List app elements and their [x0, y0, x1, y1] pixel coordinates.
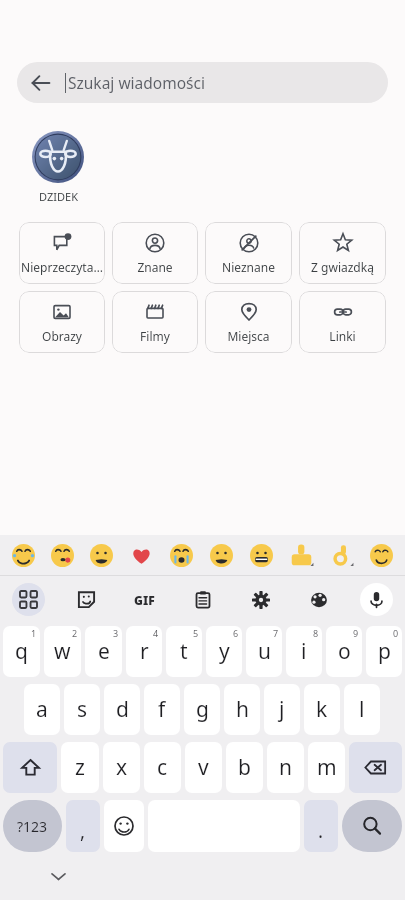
button[interactable]: k — [304, 684, 340, 735]
button[interactable]: Obrazy — [19, 291, 105, 353]
button[interactable]: ?123 — [3, 800, 62, 852]
button[interactable]: Emoji — [4, 535, 43, 575]
staticText: b — [238, 753, 251, 782]
button[interactable]: Emoji — [241, 535, 281, 575]
button[interactable]: Miejsca — [205, 291, 292, 353]
staticText: h — [236, 695, 249, 724]
button[interactable]: DZIDEK — [28, 131, 88, 204]
button[interactable]: n — [267, 742, 304, 793]
staticText: r — [140, 637, 149, 666]
staticText: d — [116, 695, 129, 724]
button[interactable]: o — [326, 626, 362, 677]
staticText: , — [80, 818, 86, 844]
button[interactable]: p — [366, 626, 402, 677]
button[interactable]: Emoji — [121, 535, 161, 575]
button[interactable]: Settings — [244, 583, 277, 616]
staticText: 8 — [313, 627, 319, 639]
staticText: x — [116, 753, 128, 782]
staticText: DZIDEK — [39, 189, 78, 204]
button[interactable]: u — [246, 626, 282, 677]
staticText: g — [196, 695, 209, 724]
button[interactable]: Shift — [3, 742, 57, 793]
staticText: q — [15, 637, 28, 666]
staticText: v — [198, 753, 209, 782]
button[interactable]: y — [206, 626, 242, 677]
button[interactable]: d — [104, 684, 140, 735]
button[interactable]: , — [66, 800, 100, 852]
staticText: Miejsca — [227, 328, 270, 344]
button[interactable]: z — [61, 742, 99, 793]
button[interactable]: Stickers — [70, 583, 103, 616]
button[interactable]: r — [126, 626, 162, 677]
button[interactable]: Search — [342, 800, 402, 852]
staticText: s — [77, 695, 88, 724]
button[interactable]: Back — [17, 62, 388, 103]
staticText: Linki — [329, 328, 356, 344]
staticText: 1 — [31, 627, 37, 639]
button[interactable]: Nieprzeczyta… — [19, 222, 105, 284]
button[interactable]: Emoji — [321, 535, 361, 575]
staticText: . — [318, 818, 324, 844]
button[interactable]: i — [286, 626, 322, 677]
staticText: m — [317, 753, 337, 782]
staticText: c — [157, 753, 168, 782]
other: Back — [17, 62, 65, 103]
button[interactable]: t — [166, 626, 202, 677]
button[interactable]: Emoji — [281, 535, 321, 575]
button[interactable]: Themes — [302, 583, 335, 616]
button[interactable]: Emoji — [82, 535, 121, 575]
staticText: 2 — [72, 627, 78, 639]
staticText: 9 — [353, 627, 359, 639]
button[interactable]: e — [85, 626, 122, 677]
button[interactable]: h — [224, 684, 260, 735]
button[interactable]: Hide keyboard — [44, 862, 72, 890]
button[interactable]: f — [144, 684, 180, 735]
button[interactable]: m — [308, 742, 345, 793]
button[interactable]: Emoji — [201, 535, 241, 575]
button[interactable]: l — [344, 684, 380, 735]
button[interactable]: Voice input — [360, 583, 393, 616]
staticText: k — [316, 695, 328, 724]
button[interactable]: Clipboard — [186, 583, 219, 616]
staticText: i — [301, 637, 307, 666]
button[interactable]: s — [64, 684, 100, 735]
button[interactable]: Emoji — [43, 535, 82, 575]
button[interactable]: . — [304, 800, 338, 852]
staticText: z — [75, 753, 85, 782]
staticText: 6 — [233, 627, 239, 639]
staticText: Znane — [137, 259, 173, 275]
staticText: 3 — [113, 627, 119, 639]
button[interactable]: j — [264, 684, 300, 735]
button[interactable]: q — [3, 626, 40, 677]
button[interactable]: Backspace — [349, 742, 402, 793]
button[interactable]: w — [44, 626, 81, 677]
button[interactable]: v — [185, 742, 222, 793]
staticText: e — [98, 637, 110, 666]
button[interactable]: Linki — [299, 291, 386, 353]
staticText: t — [180, 637, 188, 666]
staticText: 4 — [153, 627, 159, 639]
button[interactable]: Nieznane — [205, 222, 292, 284]
button[interactable]: Emoji — [104, 800, 144, 852]
button[interactable]: Emoji — [161, 535, 201, 575]
button[interactable]: Z gwiazdką — [299, 222, 386, 284]
button[interactable]: c — [144, 742, 181, 793]
button[interactable]: g — [184, 684, 220, 735]
button[interactable]: Emoji — [361, 535, 401, 575]
button[interactable]: GIF — [128, 583, 161, 616]
staticText: GIF — [134, 592, 155, 608]
staticText: j — [279, 695, 285, 724]
button[interactable]: Znane — [112, 222, 198, 284]
button[interactable]: x — [103, 742, 140, 793]
button[interactable]: b — [226, 742, 263, 793]
staticText: 7 — [273, 627, 279, 639]
button[interactable]: Filmy — [112, 291, 198, 353]
staticText: l — [359, 695, 365, 724]
staticText: ?123 — [17, 817, 48, 836]
staticText: Szukaj wiadomości — [68, 72, 205, 93]
staticText: n — [279, 753, 292, 782]
button[interactable]: a — [24, 684, 60, 735]
button[interactable]: Emoji categories — [12, 583, 45, 616]
staticText: Obrazy — [42, 328, 82, 344]
